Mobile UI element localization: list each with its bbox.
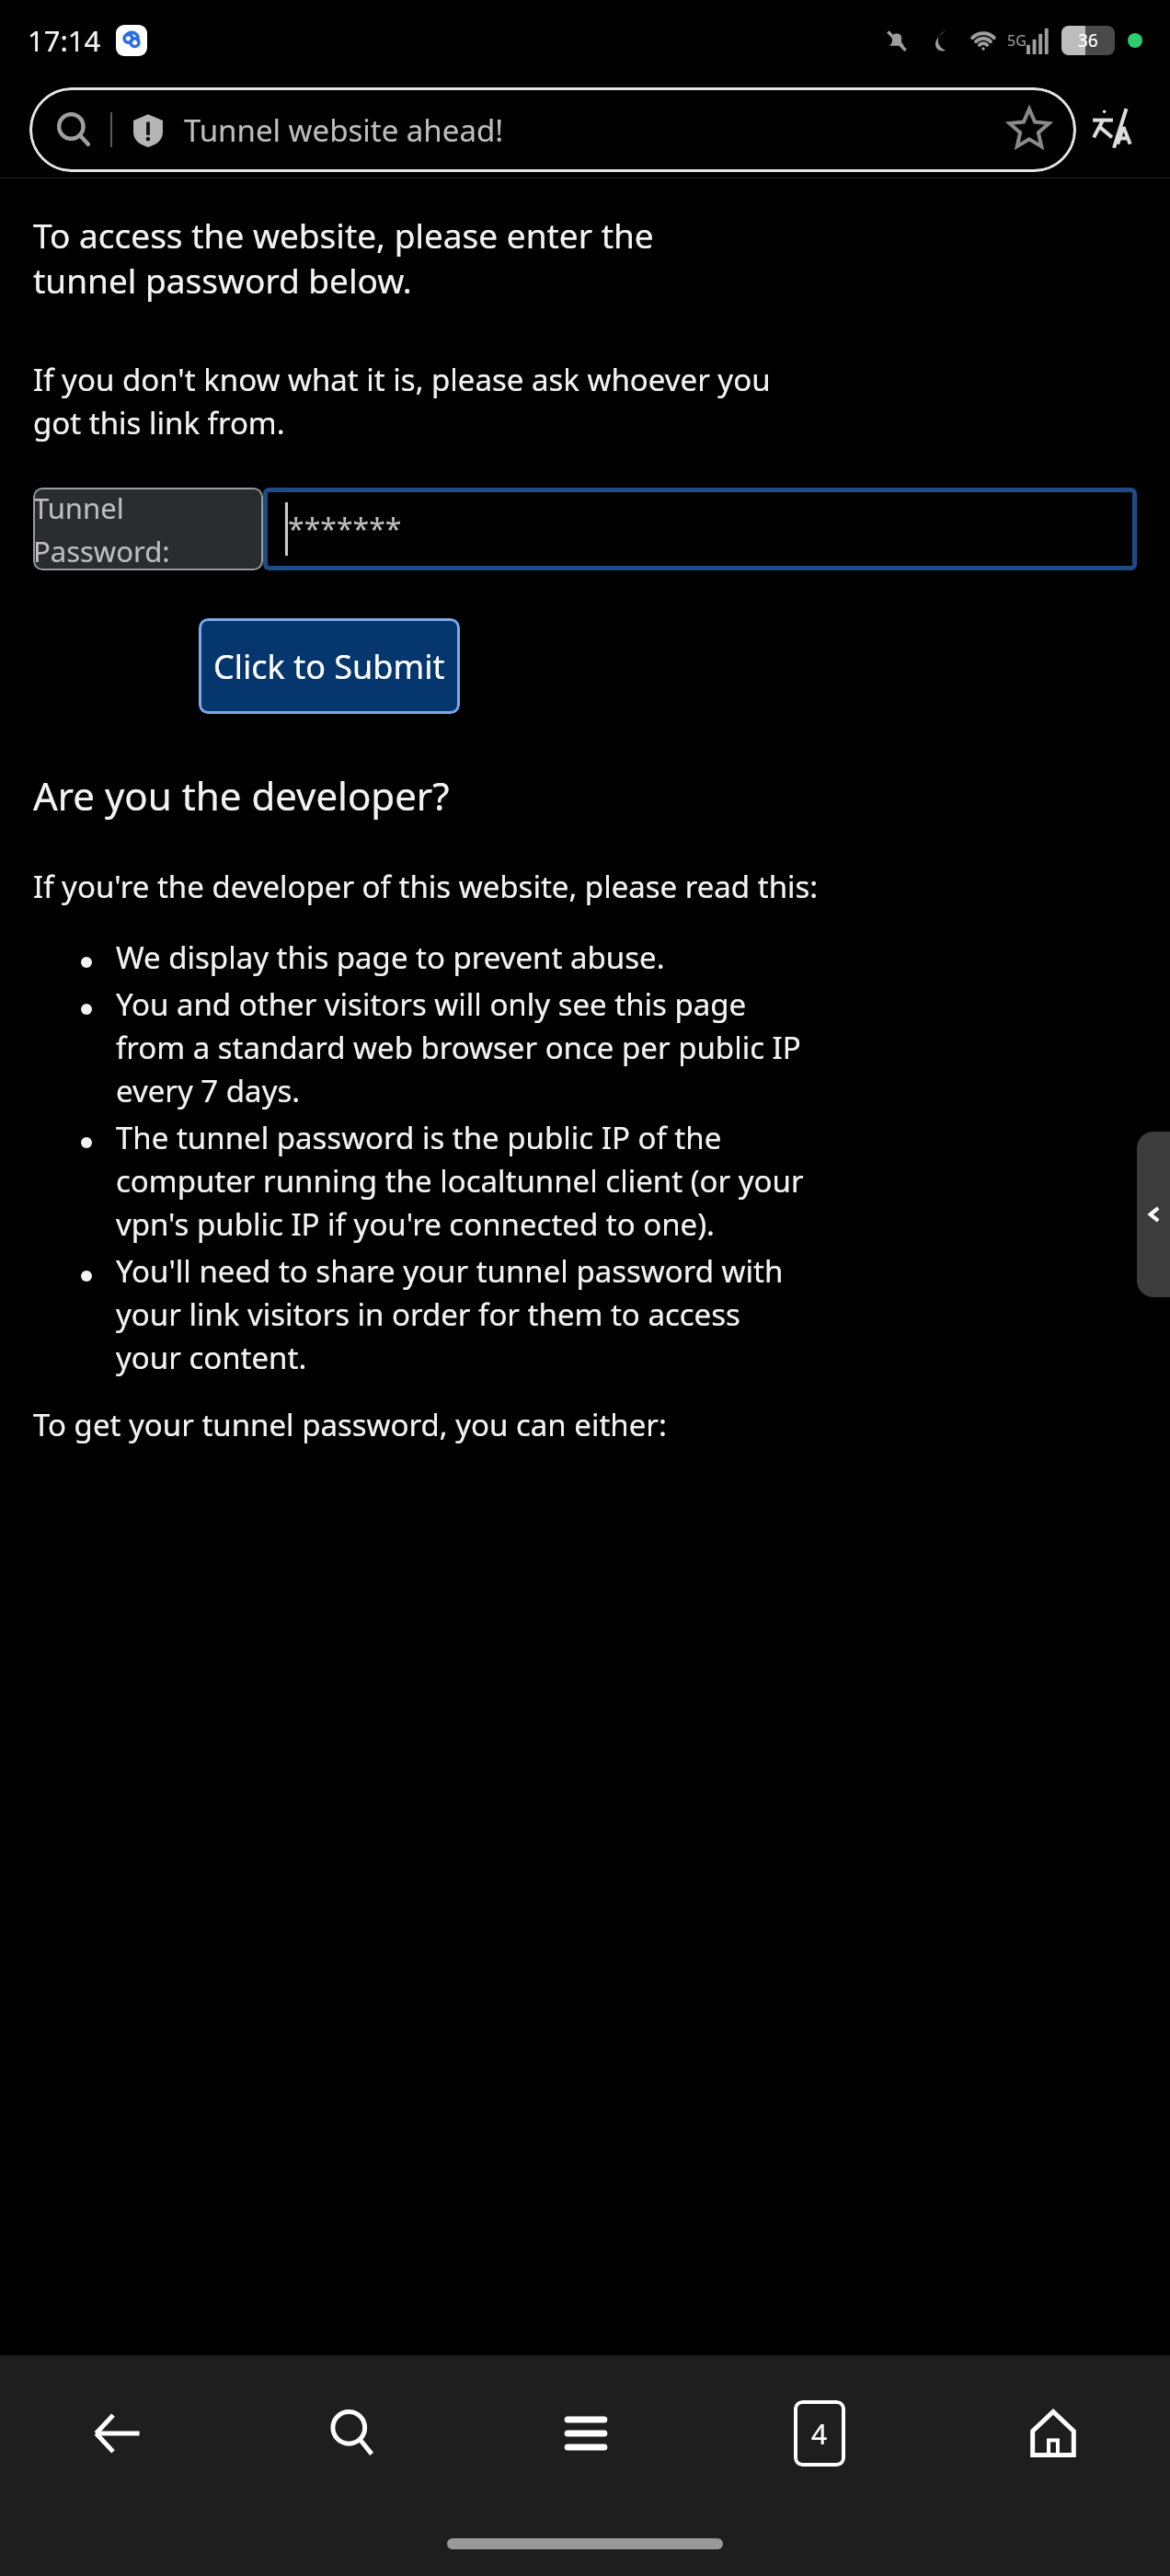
button[interactable]: Home (936, 2355, 1170, 2512)
button[interactable]: Open side panel (1137, 1132, 1170, 1297)
staticText: The tunnel password is the public IP of … (116, 1117, 804, 1245)
staticText: 5G (1007, 30, 1027, 51)
button[interactable]: ******* (263, 488, 1137, 570)
button[interactable]: Tunnel Password: (33, 488, 263, 570)
button[interactable]: Menu (469, 2355, 703, 2512)
staticText: To get your tunnel password, you can eit… (33, 1404, 667, 1445)
staticText: If you're the developer of this website,… (33, 866, 819, 907)
staticText: Are you the developer? (33, 769, 450, 822)
button[interactable]: Bookmark (1003, 103, 1056, 156)
staticText: If you don't know what it is, please ask… (33, 359, 771, 443)
staticText: 17:14 (28, 21, 101, 60)
button[interactable]: Translate (1076, 92, 1152, 167)
staticText: You and other visitors will only see thi… (116, 983, 801, 1111)
other: Search (53, 109, 94, 150)
button[interactable]: Tabs (794, 2400, 845, 2467)
button[interactable]: Click to Submit (199, 618, 460, 714)
staticText: Tunnel Password: (33, 489, 263, 570)
staticText: We display this page to prevent abuse. (116, 937, 665, 978)
button[interactable]: Back (0, 2355, 235, 2512)
staticText: You'll need to share your tunnel passwor… (116, 1250, 784, 1378)
button[interactable]: Search (29, 87, 1076, 172)
staticText: To access the website, please enter the … (33, 212, 654, 304)
staticText: 4 (811, 2415, 828, 2453)
staticText: Click to Submit (213, 644, 445, 689)
staticText: ******* (288, 509, 402, 549)
staticText: 36 (1078, 29, 1098, 52)
staticText: Tunnel website ahead! (184, 109, 1003, 151)
button[interactable]: Search (235, 2355, 469, 2512)
